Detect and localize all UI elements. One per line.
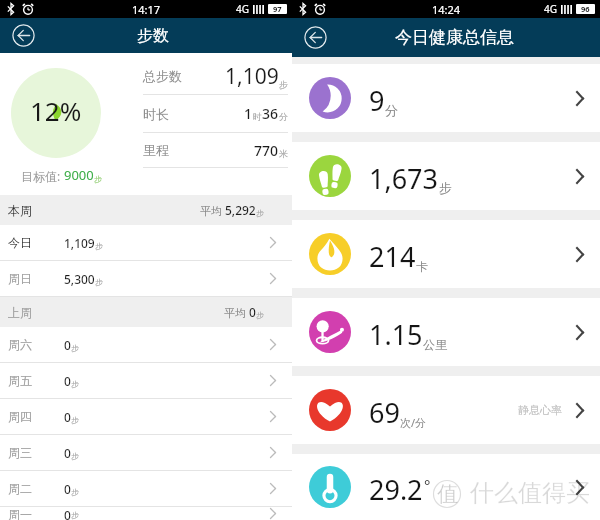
button[interactable]: 29.2 xyxy=(292,454,600,520)
staticText: 步 xyxy=(95,241,103,251)
button[interactable]: 周一 xyxy=(0,507,292,520)
staticText: 4G xyxy=(236,2,249,16)
button[interactable]: 1,673 xyxy=(292,142,600,210)
button[interactable]: 周六 xyxy=(0,327,292,363)
button[interactable]: Back xyxy=(304,26,327,49)
staticText: 步 xyxy=(279,79,288,90)
staticText: 步 xyxy=(94,174,102,184)
staticText: 今日 xyxy=(8,235,64,250)
staticText: 周二 xyxy=(8,481,64,496)
staticText: 上周 xyxy=(8,305,32,320)
staticText: 214 xyxy=(369,238,416,275)
staticText: 公里 xyxy=(423,337,447,352)
staticText: 0 xyxy=(64,409,71,425)
staticText: 96 xyxy=(581,4,590,14)
staticText: 步 xyxy=(71,415,79,425)
staticText: 770 xyxy=(254,141,279,160)
staticText: 步 xyxy=(256,208,264,218)
staticText: 次/分 xyxy=(400,415,427,430)
button[interactable]: 9 xyxy=(292,64,600,132)
staticText: 步 xyxy=(71,379,79,389)
staticText: 4G xyxy=(544,2,557,16)
staticText: 1,673 xyxy=(369,160,439,197)
staticText: ° xyxy=(424,475,431,495)
staticText: 1 xyxy=(244,104,253,123)
staticText: 步 xyxy=(439,180,452,196)
staticText: 0 xyxy=(64,373,71,389)
staticText: 什么值得买 xyxy=(470,478,590,508)
staticText: 步 xyxy=(71,510,79,520)
staticText: 周日 xyxy=(8,271,64,286)
staticText: 静息心率 xyxy=(518,403,562,417)
staticText: 36 xyxy=(262,104,279,123)
staticText: 步 xyxy=(71,451,79,461)
staticText: 9000 xyxy=(64,166,94,184)
staticText: 69 xyxy=(369,394,400,431)
staticText: 步 xyxy=(71,487,79,497)
button[interactable]: 周三 xyxy=(0,435,292,471)
staticText: 目标值: xyxy=(21,168,64,184)
staticText: 29.2 xyxy=(369,471,423,508)
staticText: 0 xyxy=(64,337,71,353)
staticText: 周五 xyxy=(8,373,64,388)
staticText: 1.15 xyxy=(369,316,423,353)
staticText: 时 xyxy=(253,111,262,122)
staticText: 步 xyxy=(71,343,79,353)
staticText: 平均 xyxy=(224,305,249,320)
button[interactable]: 214 xyxy=(292,220,600,288)
staticText: 周一 xyxy=(8,507,64,520)
staticText: 本周 xyxy=(8,203,32,218)
staticText: 周六 xyxy=(8,337,64,352)
staticText: 周四 xyxy=(8,409,64,424)
staticText: 总步数 xyxy=(143,68,182,84)
staticText: 时长 xyxy=(143,106,169,122)
staticText: 今日健康总信息 xyxy=(395,27,514,48)
button[interactable]: 69 xyxy=(292,376,600,444)
staticText: 0 xyxy=(64,481,71,497)
staticText: 米 xyxy=(279,148,288,159)
staticText: 0 xyxy=(249,304,256,320)
staticText: 步 xyxy=(256,310,264,320)
staticText: 0 xyxy=(64,445,71,461)
staticText: 步 xyxy=(95,277,103,287)
staticText: 分 xyxy=(385,102,398,118)
staticText: 1,109 xyxy=(225,62,279,91)
button[interactable]: 周四 xyxy=(0,399,292,435)
staticText: 1,109 xyxy=(64,235,95,251)
button[interactable]: 今日 xyxy=(0,225,292,261)
button[interactable]: 周日 xyxy=(0,261,292,297)
staticText: 值 xyxy=(437,481,458,507)
staticText: 0 xyxy=(64,507,71,520)
staticText: 9 xyxy=(369,82,385,119)
staticText: 5,292 xyxy=(225,202,256,218)
button[interactable]: 1.15 xyxy=(292,298,600,366)
staticText: 5,300 xyxy=(64,271,95,287)
staticText: 分 xyxy=(279,111,288,122)
staticText: 里程 xyxy=(143,142,169,158)
staticText: 14:17 xyxy=(132,2,161,17)
button[interactable]: 周二 xyxy=(0,471,292,507)
staticText: 步数 xyxy=(137,26,169,46)
button[interactable]: 周五 xyxy=(0,363,292,399)
staticText: 97 xyxy=(273,4,282,14)
staticText: 平均 xyxy=(200,203,225,218)
button[interactable]: Back xyxy=(12,24,35,47)
staticText: 周三 xyxy=(8,445,64,460)
staticText: 14:24 xyxy=(432,2,461,17)
staticText: 12% xyxy=(30,93,82,128)
staticText: 卡 xyxy=(416,259,428,274)
